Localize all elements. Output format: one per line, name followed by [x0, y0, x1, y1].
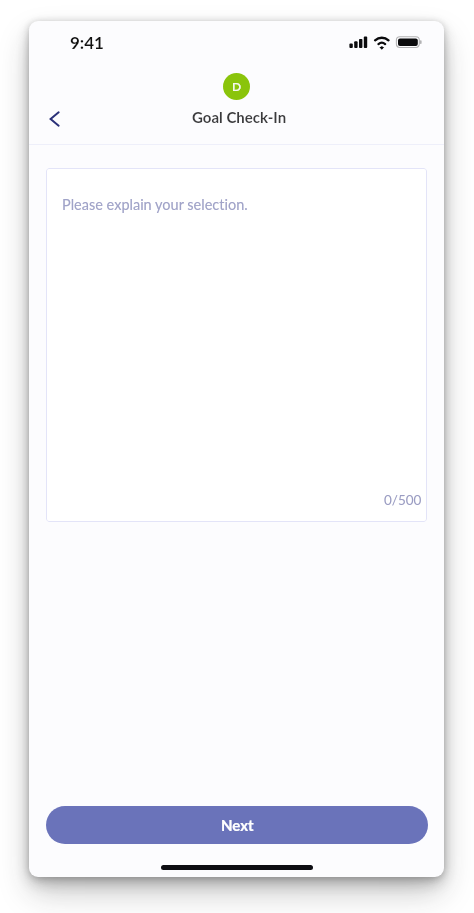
- staticText: Next: [221, 816, 254, 834]
- staticText: D: [232, 79, 242, 93]
- button[interactable]: Please explain your selection.: [46, 168, 427, 522]
- staticText: 0/500: [384, 492, 422, 508]
- staticText: Please explain your selection.: [62, 196, 248, 213]
- staticText: Goal Check-In: [192, 108, 287, 126]
- staticText: 9:41: [70, 32, 104, 52]
- button[interactable]: Next: [46, 806, 428, 844]
- button[interactable]: Back: [33, 98, 75, 140]
- button[interactable]: D: [223, 73, 250, 100]
